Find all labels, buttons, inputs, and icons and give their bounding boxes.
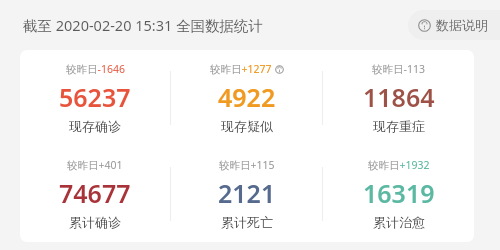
staticText: 现存重症 [373, 118, 425, 134]
button[interactable]: 较昨日+401 [20, 158, 170, 230]
staticText: 4922 [218, 80, 276, 114]
staticText: 56237 [59, 80, 131, 114]
other: Data explanation [418, 19, 431, 32]
button[interactable]: Data explanation [408, 10, 500, 40]
staticText: 较昨日+401 [67, 158, 123, 172]
staticText: 累计死亡 [221, 214, 273, 230]
button[interactable]: 较昨日+1277 [171, 62, 322, 134]
staticText: 数据说明 [436, 17, 488, 33]
staticText: 现存疑似 [221, 118, 273, 134]
staticText: 较昨日+1277 [210, 62, 272, 76]
staticText: 现存确诊 [69, 118, 121, 134]
staticText: 截至 2020-02-20 15:31 全国数据统计 [23, 15, 264, 35]
button[interactable]: 较昨日-1646 [20, 62, 170, 134]
staticText: 累计确诊 [69, 214, 121, 230]
staticText: 2121 [218, 176, 276, 210]
staticText: 11864 [363, 80, 435, 114]
staticText: 16319 [363, 176, 435, 210]
staticText: 较昨日-1646 [66, 62, 125, 76]
button[interactable]: 较昨日+1932 [323, 158, 474, 230]
staticText: 较昨日+1932 [368, 158, 430, 172]
staticText: 较昨日-113 [372, 62, 425, 76]
button[interactable]: 较昨日-113 [323, 62, 474, 134]
button[interactable]: 较昨日+115 [171, 158, 322, 230]
staticText: 74677 [59, 176, 131, 210]
staticText: 较昨日+115 [219, 158, 275, 172]
staticText: 累计治愈 [373, 214, 425, 230]
